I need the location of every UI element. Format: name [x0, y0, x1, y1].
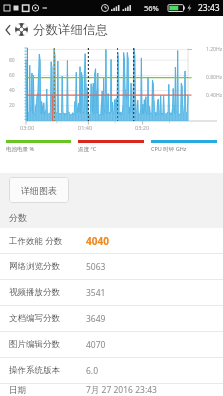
staticText: 23:43	[198, 2, 220, 14]
staticText: 7月 27 2016 23:43	[86, 384, 157, 396]
button[interactable]: 详细图表	[9, 177, 69, 203]
staticText: 网络浏览分数	[9, 261, 60, 272]
staticText: 01:40	[78, 124, 93, 131]
staticText: 操作系统版本	[9, 365, 60, 376]
button[interactable]: 视频播放分数	[0, 280, 223, 305]
staticText: 分数详细信息	[33, 22, 108, 38]
staticText: 56%	[144, 3, 159, 13]
staticText: CPU 时钟 GHz	[151, 145, 217, 153]
staticText: 4070	[86, 339, 106, 351]
staticText: 0.40Hz	[206, 92, 222, 99]
staticText: 3649	[86, 313, 106, 325]
staticText: 60	[9, 72, 15, 79]
button[interactable]: 日期	[0, 384, 223, 396]
button[interactable]: 操作系统版本	[0, 358, 223, 383]
staticText: 3541	[86, 287, 106, 299]
staticText: 分数	[9, 212, 27, 223]
staticText: 温度 °C	[78, 145, 144, 153]
staticText: 电池电量 %	[6, 145, 71, 153]
staticText: 40	[9, 87, 15, 94]
button[interactable]: 网络浏览分数	[0, 254, 223, 279]
staticText: 03:00	[20, 124, 35, 131]
staticText: 6.0	[86, 365, 99, 377]
staticText: 日期	[9, 385, 26, 396]
button[interactable]: Back	[0, 16, 118, 43]
staticText: 5063	[86, 261, 106, 273]
staticText: 20	[9, 102, 15, 109]
staticText: 0.80Hz	[206, 74, 222, 81]
staticText: 80	[9, 57, 15, 64]
staticText: 4040	[86, 234, 109, 248]
staticText: 1.20Hz	[206, 46, 222, 53]
button[interactable]: 图片编辑分数	[0, 332, 223, 357]
button[interactable]: 文档编写分数	[0, 306, 223, 331]
staticText: 文档编写分数	[9, 313, 60, 324]
staticText: 03:20	[135, 124, 150, 131]
staticText: 工作效能 分数	[9, 235, 63, 247]
staticText: 图片编辑分数	[9, 339, 60, 350]
staticText: 详细图表	[21, 185, 57, 196]
button[interactable]: 工作效能 分数	[0, 228, 223, 253]
staticText: 视频播放分数	[9, 287, 60, 298]
